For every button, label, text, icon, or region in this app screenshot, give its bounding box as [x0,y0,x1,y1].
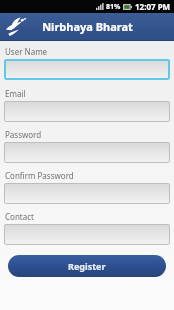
button[interactable] [4,142,170,163]
button[interactable] [4,59,170,80]
other: Logo [3,15,27,39]
staticText: 81% [106,2,121,12]
staticText: Register [68,260,106,272]
staticText: 12:07 PM [135,1,171,12]
button[interactable] [4,224,170,245]
button[interactable] [4,183,170,204]
staticText: Confirm Password [5,170,74,181]
staticText: Contact [5,211,34,222]
staticText: Email [5,88,26,99]
staticText: Nirbhaya Bharat [42,19,133,34]
button[interactable]: Register [8,255,166,277]
staticText: User Name [5,46,48,57]
button[interactable] [4,101,170,122]
staticText: Password [5,129,42,140]
